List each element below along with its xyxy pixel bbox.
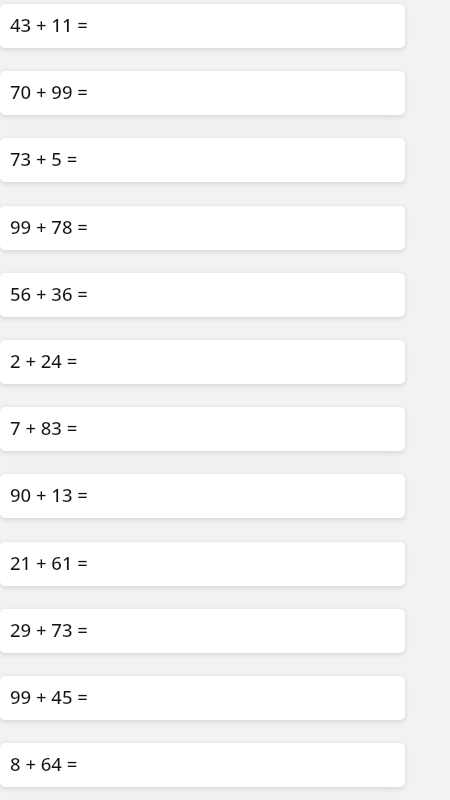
button[interactable]: 73 + 5 = <box>0 138 405 182</box>
staticText: 7 + 83 = <box>10 415 78 440</box>
button[interactable]: 29 + 73 = <box>0 609 405 653</box>
staticText: 70 + 99 = <box>10 79 88 104</box>
button[interactable]: 8 + 64 = <box>0 743 405 787</box>
button[interactable]: 90 + 13 = <box>0 474 405 518</box>
button[interactable]: 99 + 78 = <box>0 206 405 250</box>
staticText: 8 + 64 = <box>10 751 78 776</box>
staticText: 56 + 36 = <box>10 281 88 306</box>
staticText: 73 + 5 = <box>10 146 78 171</box>
staticText: 29 + 73 = <box>10 617 88 642</box>
staticText: 21 + 61 = <box>10 550 88 575</box>
button[interactable]: 7 + 83 = <box>0 407 405 451</box>
staticText: 43 + 11 = <box>10 12 88 37</box>
button[interactable]: 99 + 45 = <box>0 676 405 720</box>
staticText: 99 + 78 = <box>10 214 88 239</box>
button[interactable]: 43 + 11 = <box>0 4 405 48</box>
button[interactable]: 70 + 99 = <box>0 71 405 115</box>
button[interactable]: 56 + 36 = <box>0 273 405 317</box>
staticText: 2 + 24 = <box>10 348 78 373</box>
button[interactable]: 2 + 24 = <box>0 340 405 384</box>
staticText: 90 + 13 = <box>10 482 88 507</box>
button[interactable]: 21 + 61 = <box>0 542 405 586</box>
staticText: 99 + 45 = <box>10 684 88 709</box>
